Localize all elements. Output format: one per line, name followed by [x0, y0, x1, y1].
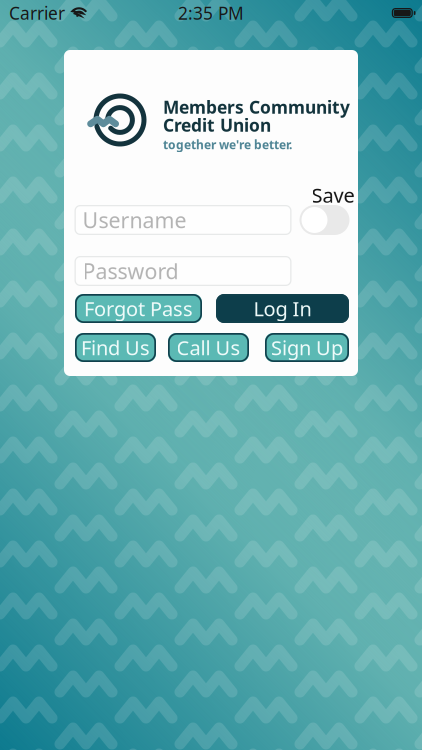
staticText: Save — [311, 182, 354, 208]
staticText: Members Community — [163, 95, 350, 118]
staticText: Find Us — [81, 334, 150, 361]
staticText: 2:35 PM — [178, 1, 244, 24]
staticText: together we're better. — [163, 136, 292, 152]
button[interactable]: Call Us — [168, 333, 249, 362]
button[interactable]: Sign Up — [265, 333, 349, 362]
button[interactable]: Save credentials — [299, 205, 349, 235]
staticText: Forgot Pass — [84, 295, 193, 322]
button[interactable]: Find Us — [75, 333, 156, 362]
staticText: Credit Union — [163, 113, 271, 136]
button[interactable]: Forgot Pass — [75, 294, 202, 323]
staticText: Carrier — [9, 1, 65, 24]
staticText: Username — [82, 206, 186, 234]
staticText: Call Us — [176, 334, 240, 361]
staticText: Sign Up — [271, 334, 343, 361]
staticText: Log In — [253, 295, 311, 322]
button[interactable]: Log In — [216, 294, 349, 323]
staticText: Password — [82, 257, 178, 285]
